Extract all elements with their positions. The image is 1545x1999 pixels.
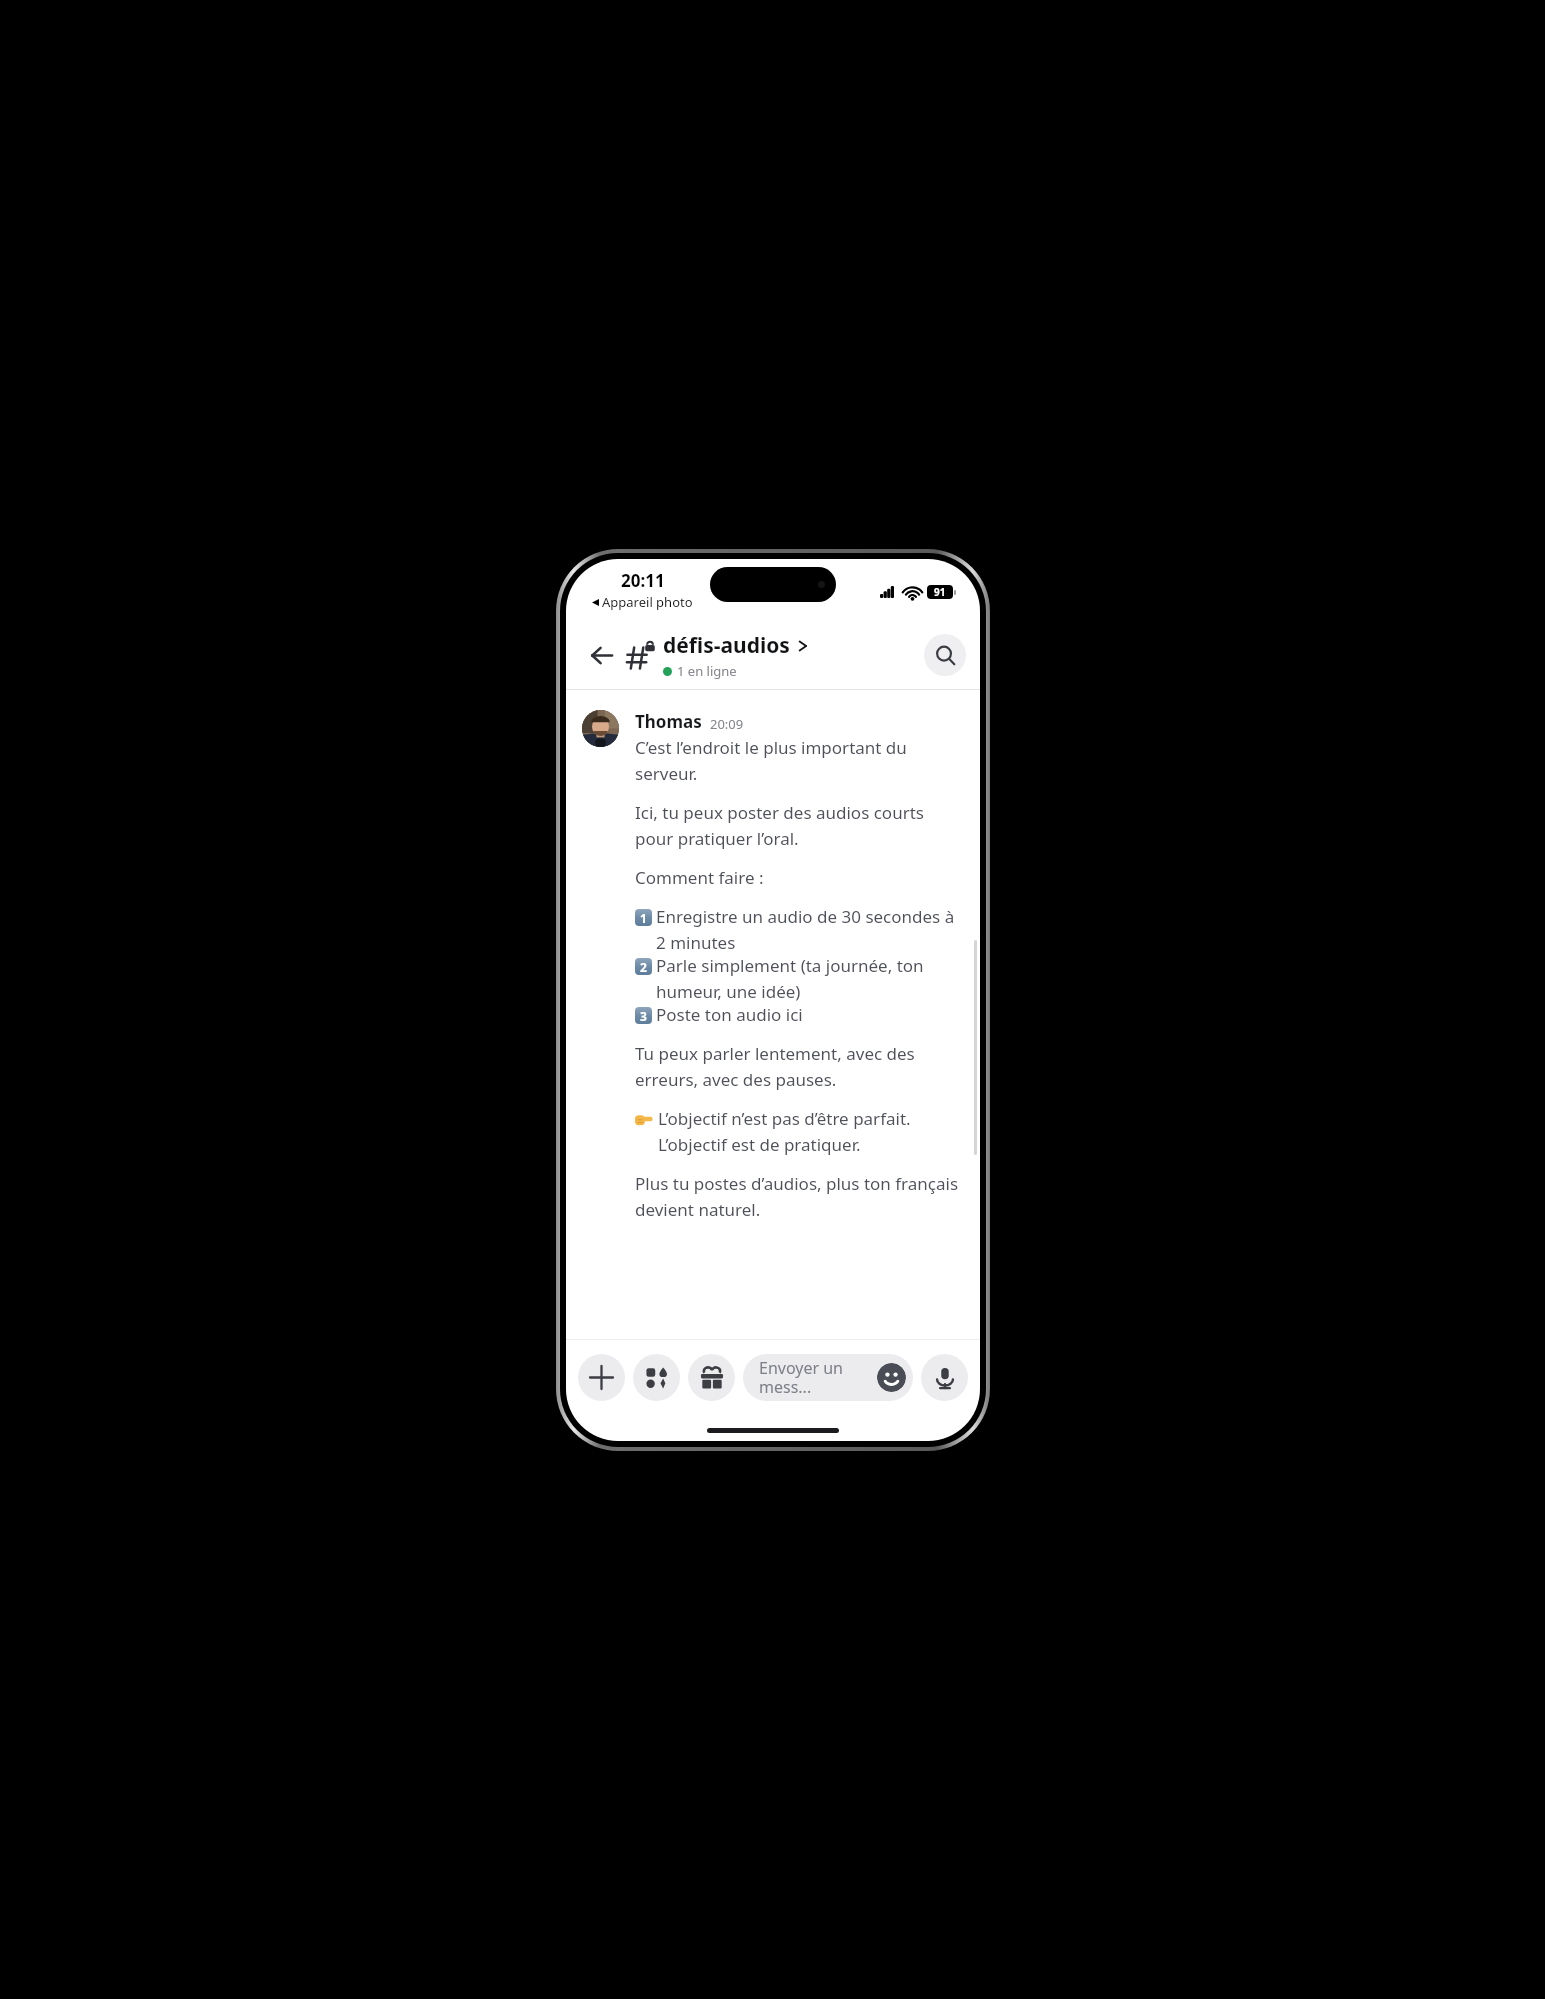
button[interactable] (582, 710, 619, 747)
button[interactable]: Micro (921, 1354, 968, 1401)
staticText: L’objectif n’est pas d’être parfait. L’o… (658, 1107, 966, 1156)
staticText: Plus tu postes d’audios, plus ton frança… (635, 1172, 966, 1221)
button[interactable]: défis-audios (663, 631, 924, 680)
staticText: Tu peux parler lentement, avec des erreu… (635, 1042, 966, 1091)
staticText: 1 en ligne (677, 662, 737, 680)
button[interactable]: Retour (580, 634, 622, 676)
staticText: Parle simplement (ta journée, ton humeur… (656, 954, 966, 1003)
staticText: 20:09 (710, 715, 744, 733)
staticText: 2 (640, 959, 647, 975)
staticText: Comment faire : (635, 866, 764, 889)
staticText: Poste ton audio ici (656, 1003, 966, 1026)
button[interactable]: Stickers (633, 1354, 680, 1401)
button[interactable]: Envoyer un mess... (743, 1354, 913, 1401)
staticText: 91 (934, 585, 946, 599)
staticText: 3 (640, 1008, 647, 1024)
staticText: Thomas (635, 710, 702, 733)
button[interactable]: Rechercher (924, 634, 966, 676)
staticText: Ici, tu peux poster des audios courts po… (635, 801, 966, 850)
staticText: 1 (640, 910, 647, 926)
staticText: 20:11 (621, 569, 665, 592)
button[interactable]: Emoji (877, 1363, 906, 1392)
staticText: Appareil photo (602, 593, 693, 611)
staticText: Enregistre un audio de 30 secondes à 2 m… (656, 905, 966, 954)
staticText: C’est l’endroit le plus important du ser… (635, 736, 966, 785)
button[interactable]: Cadeau (688, 1354, 735, 1401)
staticText: Envoyer un mess... (759, 1357, 877, 1398)
button[interactable]: Ajouter (578, 1354, 625, 1401)
staticText: défis-audios (663, 631, 790, 660)
